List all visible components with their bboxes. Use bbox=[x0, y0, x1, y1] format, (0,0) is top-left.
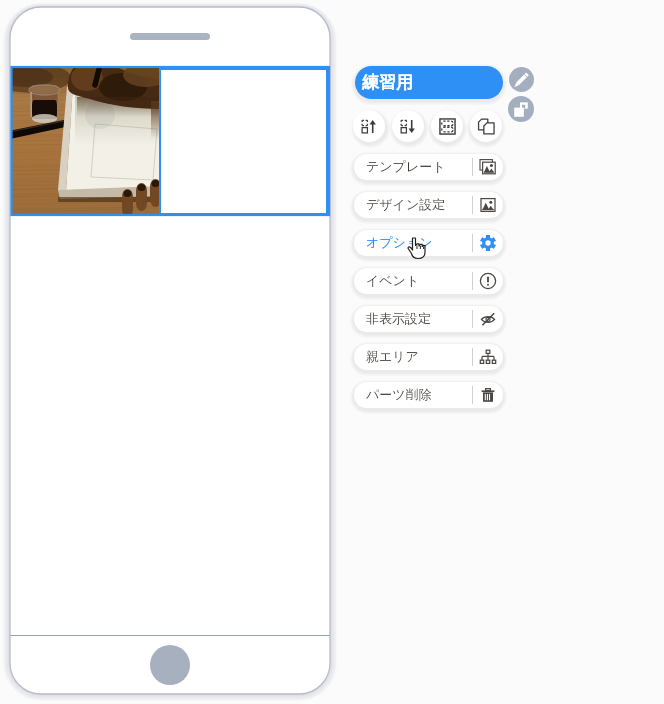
button[interactable]: Move up bbox=[353, 110, 385, 142]
button[interactable]: 練習用 bbox=[355, 66, 503, 99]
button[interactable]: Empty part area bbox=[160, 67, 328, 214]
staticText: イベント bbox=[366, 272, 420, 288]
staticText: デザイン設定 bbox=[366, 196, 446, 212]
button[interactable]: パーツ削除 bbox=[354, 382, 503, 408]
staticText: 親エリア bbox=[366, 348, 419, 364]
button[interactable]: Move down bbox=[392, 110, 424, 142]
button[interactable]: Selected image part bbox=[11, 67, 160, 214]
staticText: テンプレート bbox=[366, 158, 446, 174]
button[interactable]: Layout bbox=[431, 110, 463, 142]
button[interactable]: 非表示設定 bbox=[354, 306, 503, 332]
button[interactable]: イベント bbox=[354, 268, 503, 294]
staticText: オプション bbox=[366, 234, 433, 250]
button[interactable]: Duplicate bbox=[470, 110, 502, 142]
staticText: パーツ削除 bbox=[366, 386, 432, 402]
button[interactable]: オプション bbox=[354, 230, 503, 256]
button[interactable]: Rename bbox=[509, 67, 534, 92]
staticText: 非表示設定 bbox=[366, 310, 431, 326]
button[interactable]: デザイン設定 bbox=[354, 192, 503, 218]
button[interactable]: Unlock bbox=[508, 96, 534, 122]
button[interactable]: テンプレート bbox=[354, 154, 503, 180]
staticText: 練習用 bbox=[362, 72, 413, 93]
button[interactable]: 親エリア bbox=[354, 344, 503, 370]
